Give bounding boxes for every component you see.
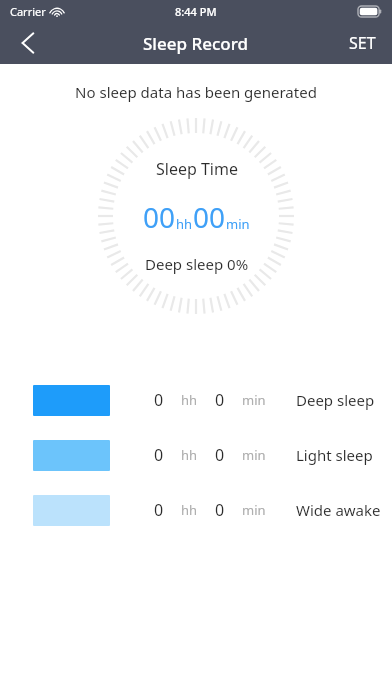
staticText: SET [349, 32, 376, 54]
staticText: min [226, 215, 250, 233]
staticText: Sleep Time [156, 158, 238, 180]
staticText: 00 [193, 198, 226, 236]
staticText: No sleep data has been generated [0, 82, 392, 102]
staticText: 0 [215, 389, 225, 411]
staticText: 0 [154, 499, 164, 521]
staticText: min [242, 446, 266, 464]
staticText: 0 [215, 444, 225, 466]
staticText: Deep sleep 0% [145, 254, 249, 274]
staticText: 0 [154, 444, 164, 466]
staticText: hh [181, 391, 198, 409]
staticText: min [242, 391, 266, 409]
staticText: 0 [215, 499, 225, 521]
staticText: hh [176, 215, 193, 233]
staticText: Sleep Record [143, 32, 249, 55]
staticText: Wide awake [296, 500, 381, 520]
staticText: hh [181, 501, 198, 519]
staticText: 00 [143, 198, 176, 236]
button[interactable]: SET [333, 22, 392, 64]
button[interactable]: Back [0, 22, 54, 64]
staticText: Carrier [10, 4, 46, 19]
button[interactable]: 0 [0, 439, 392, 471]
staticText: hh [181, 446, 198, 464]
button[interactable]: 0 [0, 384, 392, 416]
staticText: 8:44 PM [175, 4, 217, 19]
staticText: Deep sleep [296, 390, 375, 410]
staticText: Light sleep [296, 445, 373, 465]
staticText: 0 [154, 389, 164, 411]
button[interactable]: 0 [0, 494, 392, 526]
staticText: min [242, 501, 266, 519]
